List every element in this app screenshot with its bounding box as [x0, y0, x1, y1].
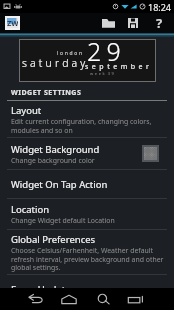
- staticText: Location: [11, 203, 50, 216]
- button[interactable]: Layout: [0, 101, 174, 137]
- staticText: w e e k 3 9: [90, 71, 115, 76]
- button[interactable]: Location: [0, 199, 174, 229]
- staticText: WIDGET SETTINGS: [11, 88, 82, 98]
- staticText: Change Widget default Location: [11, 216, 115, 225]
- button[interactable]: Load preset: [97, 13, 119, 33]
- button[interactable]: Widget On Tap Action: [0, 170, 174, 198]
- button[interactable]: Home: [52, 288, 85, 310]
- staticText: Widget On Tap Action: [11, 178, 108, 191]
- staticText: 18:24: [148, 1, 172, 13]
- button[interactable]: Force Update: [0, 275, 174, 304]
- staticText: Choose Celsius/Farhenheit, Weather defau…: [11, 246, 164, 272]
- button[interactable]: Help: [149, 13, 170, 33]
- staticText: ZW: [7, 18, 18, 28]
- staticText: l o n d o n: [57, 50, 83, 57]
- staticText: s a t u r d a y: [22, 56, 86, 70]
- button[interactable]: Back: [18, 288, 51, 310]
- staticText: Edit current configuration, changing col…: [11, 117, 152, 135]
- button[interactable]: Zooper Widget, navigate up: [7, 18, 18, 28]
- button[interactable]: Save preset: [122, 13, 144, 33]
- staticText: Global Preferences: [11, 233, 96, 246]
- button[interactable]: Search: [87, 288, 120, 310]
- staticText: Force Update: [11, 283, 71, 296]
- staticText: Layout: [11, 104, 42, 117]
- button[interactable]: Recents: [119, 288, 152, 310]
- staticText: Change background color: [11, 156, 95, 165]
- staticText: s e p t e m b e r: [85, 62, 150, 72]
- staticText: 2 9: [87, 34, 121, 68]
- staticText: Widget Background: [11, 143, 100, 156]
- button[interactable]: Widget Background: [0, 138, 174, 169]
- button[interactable]: Widget preview: [20, 40, 155, 81]
- staticText: ?: [156, 14, 163, 32]
- button[interactable]: Global Preferences: [0, 230, 174, 274]
